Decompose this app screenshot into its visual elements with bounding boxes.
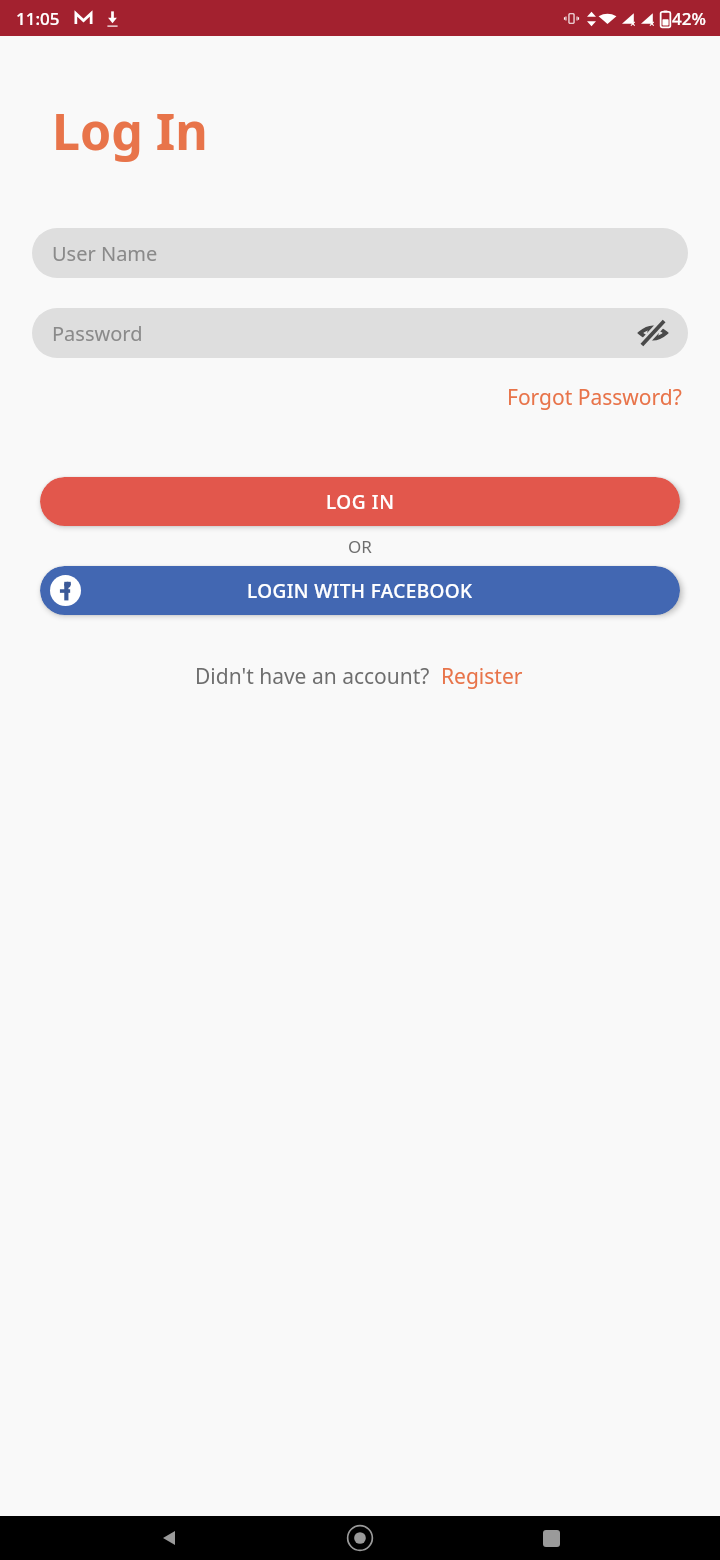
button[interactable]: LOG IN	[40, 477, 680, 526]
staticText: 11:05	[16, 7, 60, 30]
staticText: Password	[52, 320, 143, 347]
staticText: Register	[441, 662, 523, 691]
button[interactable]: Back	[147, 1516, 191, 1560]
staticText: 42%	[672, 7, 706, 30]
button[interactable]: Password	[32, 308, 688, 358]
button[interactable]: Forgot Password?	[505, 380, 684, 415]
button[interactable]: Register	[439, 659, 525, 694]
staticText: Log In	[52, 97, 208, 165]
staticText: LOG IN	[326, 489, 395, 515]
button[interactable]: User Name	[32, 228, 688, 278]
button[interactable]: Home	[338, 1516, 382, 1560]
staticText: Forgot Password?	[507, 383, 682, 412]
button[interactable]: Recent apps	[529, 1516, 573, 1560]
staticText: User Name	[52, 240, 158, 267]
staticText: LOGIN WITH FACEBOOK	[247, 578, 473, 604]
staticText: Didn't have an account?	[195, 662, 430, 691]
staticText: OR	[0, 535, 720, 558]
button[interactable]: LOGIN WITH FACEBOOK	[40, 566, 680, 615]
button[interactable]: Show password	[636, 316, 670, 350]
